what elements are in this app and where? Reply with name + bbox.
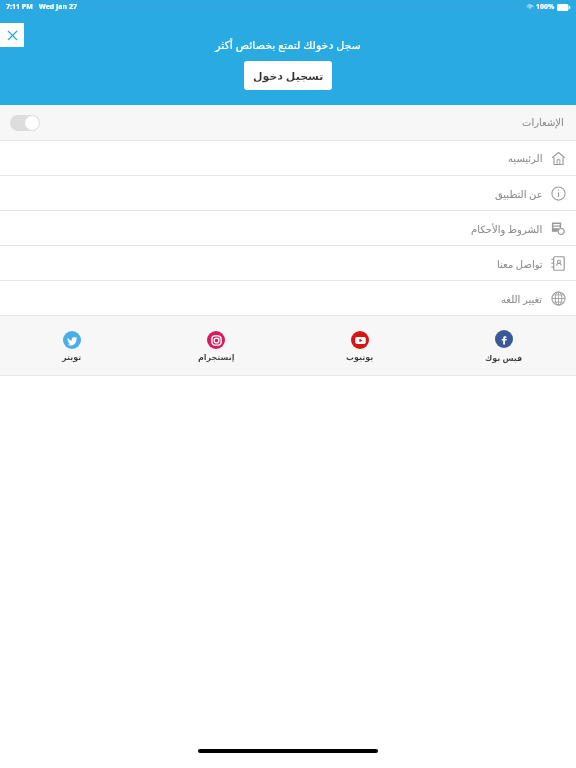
button[interactable]: الرئيسيه — [0, 141, 576, 176]
button[interactable]: يوتيوب — [288, 316, 432, 376]
staticText: 100% — [536, 2, 555, 12]
staticText: Wed Jan 27 — [39, 2, 77, 12]
staticText: الإشعارات — [522, 117, 564, 129]
staticText: تسجيل دخول — [253, 68, 324, 83]
button[interactable]: عن التطبيق — [0, 176, 576, 211]
staticText: الرئيسيه — [508, 153, 543, 165]
button[interactable]: فيس بوك — [432, 316, 576, 376]
button[interactable]: الشروط والأحكام — [0, 211, 576, 246]
staticText: يوتيوب — [346, 353, 374, 362]
staticText: تواصل معنا — [497, 257, 543, 271]
staticText: 7:11 PM — [6, 2, 33, 12]
button[interactable]: Close — [0, 23, 24, 47]
staticText: الشروط والأحكام — [471, 222, 543, 236]
staticText: عن التطبيق — [495, 187, 543, 201]
staticText: سجل دخولك لتمتع بخصائص أكثر — [215, 37, 361, 52]
button[interactable]: تغيير اللغه — [0, 281, 576, 316]
button[interactable]: الإشعارات — [0, 105, 576, 141]
button[interactable]: إنستجرام — [144, 316, 288, 376]
staticText: إنستجرام — [198, 353, 235, 362]
staticText: تويتر — [62, 353, 82, 362]
button[interactable]: تسجيل دخول — [244, 61, 332, 90]
button[interactable]: تواصل معنا — [0, 246, 576, 281]
staticText: تغيير اللغه — [501, 292, 543, 306]
staticText: فيس بوك — [485, 352, 523, 363]
button[interactable]: تويتر — [0, 316, 144, 376]
